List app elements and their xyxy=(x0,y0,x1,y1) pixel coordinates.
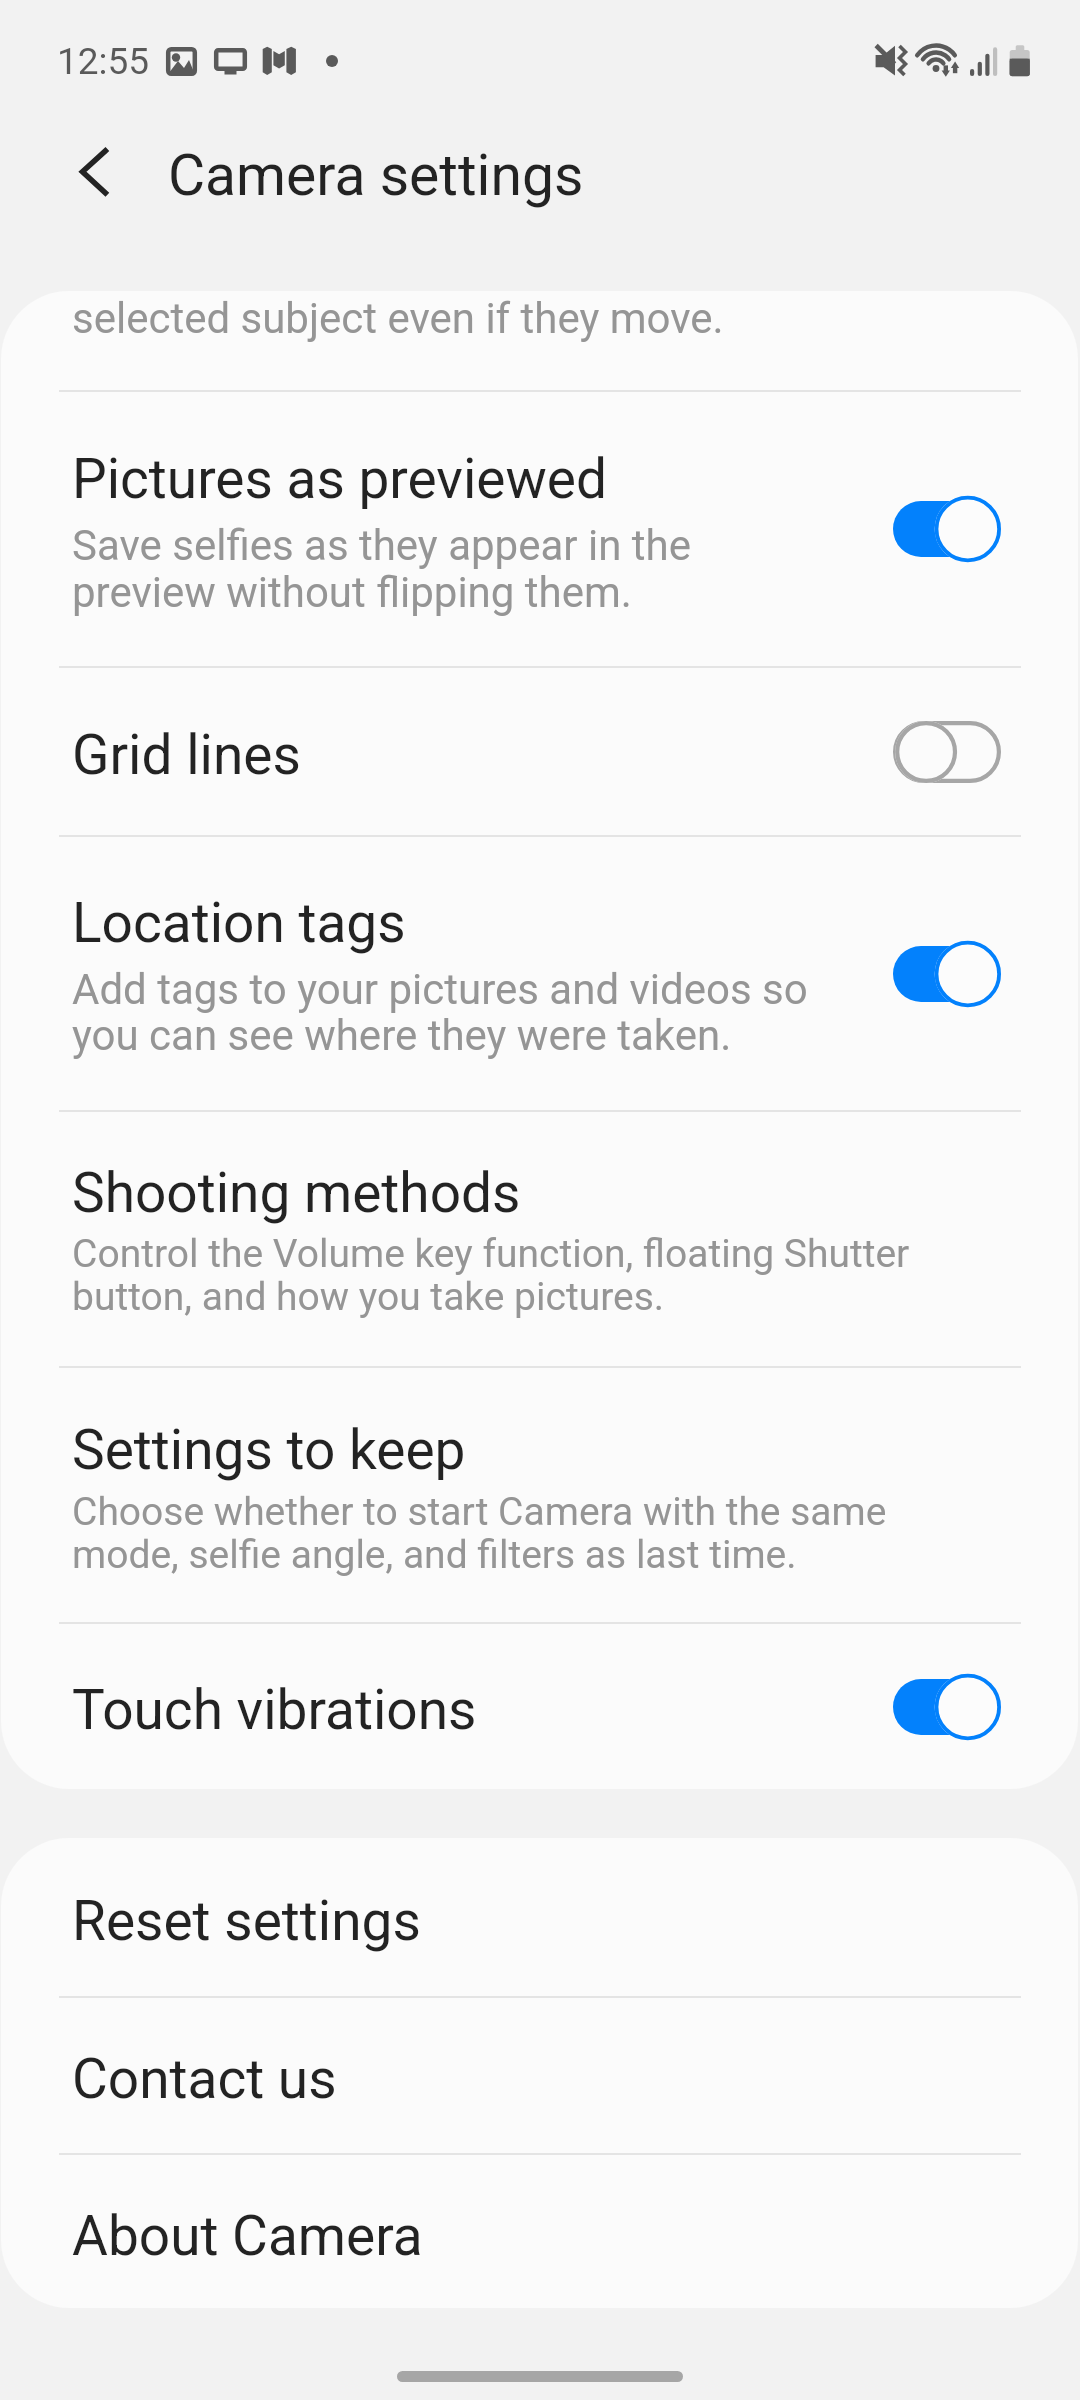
staticText: preview without flipping them. xyxy=(72,568,632,617)
staticText: 12:55 xyxy=(57,40,150,83)
button[interactable]: Touch vibrations xyxy=(893,1672,1001,1742)
button[interactable]: Grid lines xyxy=(893,717,1001,787)
button[interactable]: Touch vibrations xyxy=(1,1624,1078,1789)
button[interactable]: Pictures as previewed xyxy=(893,494,1001,564)
button[interactable]: Pictures as previewed xyxy=(1,392,1078,666)
staticText: Add tags to your pictures and videos so xyxy=(72,965,808,1014)
staticText: you can see where they were taken. xyxy=(72,1011,732,1060)
button[interactable]: Location tags xyxy=(1,837,1078,1110)
staticText: Save selfies as they appear in the xyxy=(72,521,691,570)
staticText: Grid lines xyxy=(72,723,301,787)
button[interactable]: Contact us xyxy=(1,1998,1078,2153)
staticText: Touch vibrations xyxy=(72,1678,477,1742)
staticText: Control the Volume key function, floatin… xyxy=(72,1231,910,1277)
staticText: Location tags xyxy=(72,891,406,955)
staticText: Shooting methods xyxy=(72,1161,521,1225)
staticText: Choose whether to start Camera with the … xyxy=(72,1489,887,1535)
button[interactable]: Reset settings xyxy=(1,1838,1078,1996)
button[interactable]: Shooting methods xyxy=(1,1112,1078,1366)
button[interactable]: About Camera xyxy=(1,2155,1078,2308)
staticText: button, and how you take pictures. xyxy=(72,1274,665,1320)
staticText: Reset settings xyxy=(72,1889,421,1953)
staticText: Settings to keep xyxy=(72,1418,466,1482)
staticText: About Camera xyxy=(72,2204,423,2268)
staticText: selected subject even if they move. xyxy=(72,294,724,343)
staticText: Contact us xyxy=(72,2047,337,2111)
button[interactable]: selected subject even if they move. xyxy=(1,291,1078,390)
button[interactable]: Settings to keep xyxy=(1,1368,1078,1622)
button[interactable]: Back xyxy=(28,110,128,210)
staticText: mode, selfie angle, and filters as last … xyxy=(72,1532,797,1578)
staticText: Pictures as previewed xyxy=(72,447,607,511)
button[interactable]: Location tags xyxy=(893,939,1001,1009)
staticText: Camera settings xyxy=(168,142,584,209)
button[interactable]: Grid lines xyxy=(1,668,1078,835)
